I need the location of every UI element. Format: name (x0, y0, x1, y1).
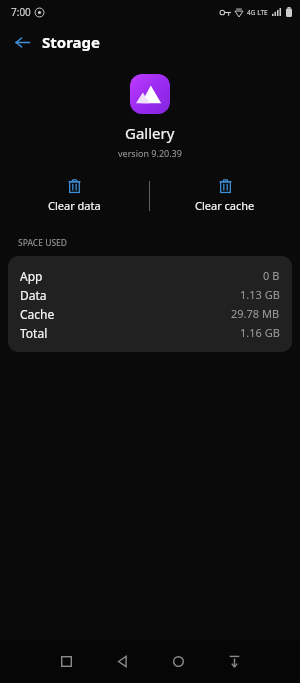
staticText: 0 B (263, 268, 280, 283)
staticText: Total (20, 325, 48, 341)
staticText: 1.16 GB (240, 325, 280, 340)
staticText: SPACE USED (18, 237, 68, 249)
button[interactable]: Back (6, 26, 38, 58)
button[interactable]: Home (150, 640, 206, 683)
staticText: 7:00 (11, 5, 31, 19)
button[interactable]: Back (94, 640, 150, 683)
button[interactable]: Hide navigation bar (206, 640, 262, 683)
staticText: Clear data (48, 198, 101, 213)
staticText: version 9.20.39 (118, 147, 182, 159)
staticText: 1.13 GB (240, 287, 280, 302)
staticText: 4G LTE (247, 8, 268, 17)
staticText: Cache (20, 306, 55, 322)
staticText: Clear cache (195, 198, 255, 213)
staticText: Data (20, 287, 47, 303)
staticText: App (20, 268, 43, 284)
button[interactable]: Clear cache (150, 173, 300, 219)
button[interactable]: Recent apps (38, 640, 94, 683)
button[interactable]: Clear data (0, 173, 149, 219)
staticText: Storage (42, 32, 100, 52)
staticText: Gallery (125, 123, 175, 143)
staticText: 29.78 MB (231, 306, 280, 321)
